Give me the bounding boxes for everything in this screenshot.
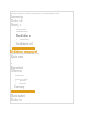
staticText: • (16, 38, 17, 41)
button[interactable]: Primary action (12, 47, 35, 50)
staticText: Incididunt ut l (16, 42, 33, 46)
staticText: ex ea (20, 79, 26, 82)
staticText: • (15, 79, 16, 82)
staticText: Consecte (16, 28, 26, 31)
staticText: Amet, c (11, 23, 22, 27)
button[interactable]: Secondary action (11, 90, 35, 93)
staticText: comm (19, 82, 26, 85)
staticText: Sed do e (16, 33, 31, 38)
staticText: Ullamco (11, 69, 23, 73)
staticText: Dolor in (11, 98, 22, 102)
staticText: Laboris (15, 73, 24, 76)
staticText: Duis aute i (11, 94, 26, 98)
staticText: Exercitat (11, 66, 23, 70)
staticText: Et dolore magna al (10, 50, 37, 54)
staticText: Adipiscing (16, 30, 28, 33)
staticText: Lorem ipsum dolor sit amet, consectetur … (10, 11, 59, 14)
staticText: Lorem ip (11, 15, 24, 19)
staticText: Conseq (14, 85, 25, 89)
staticText: Dolor sit (11, 19, 23, 23)
staticText: • (15, 82, 16, 85)
staticText: Nisi ut aliq (15, 77, 28, 80)
staticText: Quis nos (11, 55, 23, 59)
staticText: • (11, 62, 12, 66)
staticText: tempor i (20, 38, 30, 41)
staticText: Enim ad minim veniam qu (11, 52, 40, 55)
